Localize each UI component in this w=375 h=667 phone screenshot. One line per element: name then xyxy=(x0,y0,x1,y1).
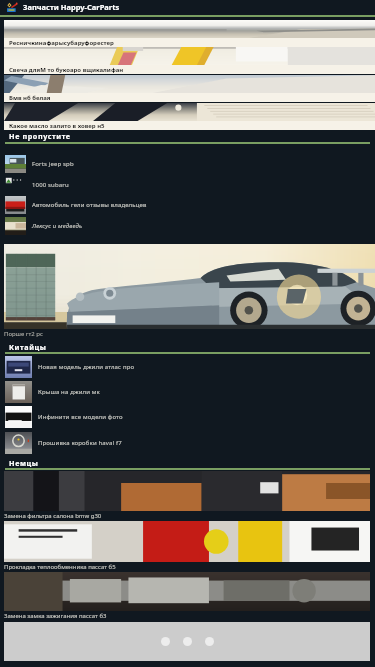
staticText: Ресничкинафарысубаруфорестер xyxy=(9,39,114,47)
button[interactable]: Инфинити все модели фото xyxy=(0,406,375,428)
staticText: Свеча дляМ то букоаро вщикалифан xyxy=(9,66,124,74)
staticText: Автомобиль гели отзывы владельцев xyxy=(32,201,147,209)
staticText: Инфинити все модели фото xyxy=(38,413,123,421)
staticText: Китайцы xyxy=(9,342,47,352)
button[interactable]: Какое масло залито в ховер н5 xyxy=(4,103,375,130)
button[interactable]: Замена фильтра салона bmw g30 xyxy=(0,471,375,520)
button[interactable]: Лексус и медведь xyxy=(0,217,375,235)
button[interactable]: Крыша на джили мк xyxy=(0,381,375,403)
staticText: Какое масло залито в ховер н5 xyxy=(9,122,105,130)
staticText: Forts jeep spb xyxy=(32,160,74,168)
staticText: Лексус и медведь xyxy=(32,222,83,230)
staticText: Крыша на джили мк xyxy=(38,388,100,396)
staticText: Запчасти Happy-CarParts xyxy=(23,2,120,12)
button[interactable]: Свеча дляМ то букоаро вщикалифан xyxy=(4,47,375,74)
staticText: Порше гт2 рс xyxy=(4,330,43,338)
staticText: Новая модель джили атлас про xyxy=(38,363,135,371)
button[interactable]: Замена замка зажигания пассат б3 xyxy=(0,572,375,620)
button[interactable]: Порше гт2 рс xyxy=(0,244,375,338)
button[interactable]: Прокладка теплообменника пассат б5 xyxy=(0,521,375,571)
button[interactable]: Новая модель джили атлас про xyxy=(0,356,375,378)
staticText: Бмв нб белая xyxy=(9,94,51,102)
staticText: Прошивка коробки haval f7 xyxy=(38,439,122,447)
staticText: 1000 subaru xyxy=(32,181,69,189)
button[interactable]: Logo xyxy=(0,0,375,14)
staticText: Не пропустите xyxy=(9,131,71,141)
button[interactable]: Автомобиль гели отзывы владельцев xyxy=(0,196,375,214)
staticText: Замена фильтра салона bmw g30 xyxy=(4,512,102,520)
other: Logo xyxy=(5,1,18,14)
staticText: Замена замка зажигания пассат б3 xyxy=(4,612,107,620)
button[interactable]: Ресничкинафарысубаруфорестер xyxy=(4,20,375,47)
staticText: Немцы xyxy=(9,458,39,468)
button[interactable]: Бмв нб белая xyxy=(4,75,375,102)
button[interactable]: Загрузка xyxy=(4,622,370,661)
button[interactable]: Forts jeep spb xyxy=(0,155,375,173)
button[interactable]: 1000 subaru xyxy=(0,176,375,194)
button[interactable]: Прошивка коробки haval f7 xyxy=(0,432,375,454)
staticText: Прокладка теплообменника пассат б5 xyxy=(4,563,116,571)
